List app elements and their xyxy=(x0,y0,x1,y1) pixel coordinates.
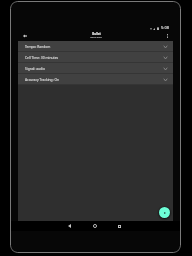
button[interactable]: More options xyxy=(163,32,171,40)
button[interactable]: Start xyxy=(159,207,170,218)
button[interactable]: Home xyxy=(82,221,107,231)
button[interactable]: Signal: audio xyxy=(18,63,173,74)
staticText: Cell Time: 30 minutes xyxy=(25,55,59,59)
button[interactable]: Tempo: Random xyxy=(18,41,173,52)
button[interactable]: Recent apps xyxy=(107,221,132,231)
staticText: Tempo: Random xyxy=(25,44,51,48)
staticText: Signal: audio xyxy=(25,66,45,70)
staticText: 5:08 xyxy=(161,25,169,30)
button[interactable]: Cell Time: 30 minutes xyxy=(18,52,173,63)
button[interactable]: Back xyxy=(57,221,82,231)
staticText: sprint trials xyxy=(90,36,102,39)
button[interactable]: Accuracy Tracking: On xyxy=(18,74,173,85)
staticText: Accuracy Tracking: On xyxy=(25,77,60,81)
button[interactable]: Navigate up xyxy=(20,31,29,40)
staticText: Bullet xyxy=(92,32,101,36)
